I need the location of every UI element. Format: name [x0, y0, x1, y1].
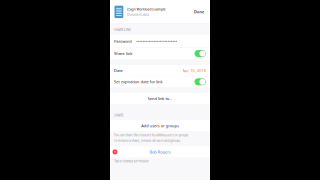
- staticText: Send link to...: [104, 116, 215, 139]
- staticText: Set expiration date for link: [0, 42, 171, 65]
- button[interactable]: Set expiration date for link: [0, 29, 320, 78]
- button[interactable]: Date: [0, 0, 320, 28]
- button[interactable]: Send link to...: [0, 102, 320, 154]
